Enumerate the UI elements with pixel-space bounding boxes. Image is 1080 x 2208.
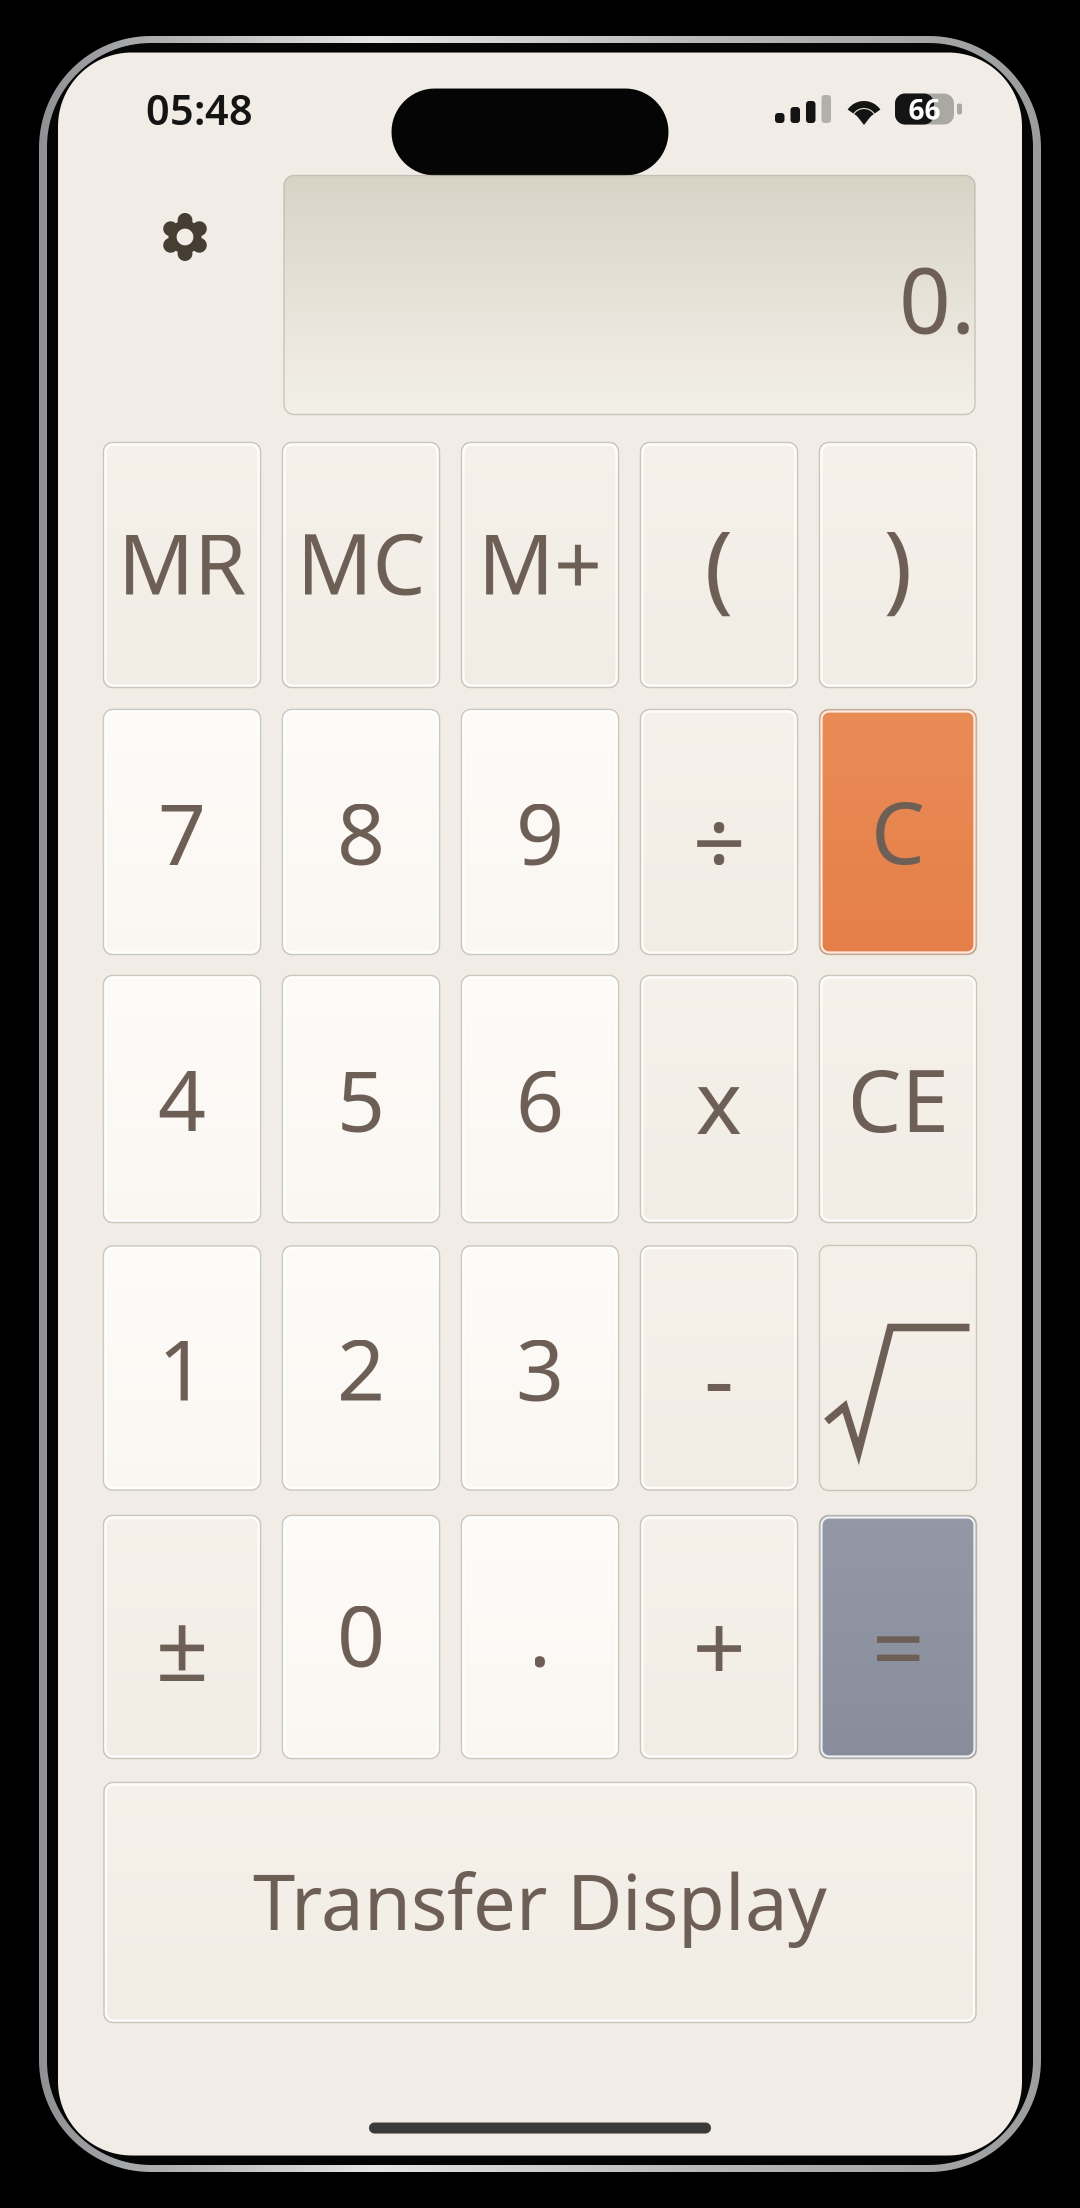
- staticText: M+: [478, 506, 602, 618]
- staticText: 1: [158, 1312, 206, 1424]
- button[interactable]: .: [461, 1515, 618, 1758]
- button[interactable]: 7: [103, 709, 260, 954]
- button[interactable]: (: [640, 442, 797, 687]
- staticText: +: [692, 1583, 745, 1707]
- button[interactable]: 5: [282, 975, 439, 1222]
- staticText: CE: [847, 1042, 948, 1156]
- button[interactable]: x: [640, 975, 797, 1222]
- button[interactable]: 4: [103, 975, 260, 1222]
- button[interactable]: Transfer Display: [104, 1782, 976, 2022]
- staticText: MC: [296, 506, 425, 618]
- staticText: 3: [516, 1312, 564, 1424]
- staticText: 6: [516, 1043, 564, 1155]
- staticText: 0: [337, 1578, 385, 1690]
- staticText: 9: [516, 776, 564, 888]
- staticText: 4: [158, 1043, 206, 1155]
- button[interactable]: +: [640, 1515, 797, 1758]
- staticText: =: [871, 1583, 924, 1707]
- button[interactable]: -: [640, 1246, 797, 1490]
- staticText: MR: [118, 506, 246, 618]
- staticText: Transfer Display: [253, 1850, 827, 1951]
- staticText: 66: [908, 90, 940, 128]
- staticText: 8: [337, 776, 385, 888]
- staticText: 05:48: [146, 82, 253, 136]
- staticText: ±: [155, 1583, 208, 1707]
- staticText: ): [883, 500, 912, 628]
- staticText: (: [704, 500, 733, 628]
- button[interactable]: 9: [461, 709, 618, 954]
- button[interactable]: MR: [103, 442, 260, 687]
- button[interactable]: C: [819, 709, 976, 954]
- staticText: -: [704, 1314, 734, 1438]
- staticText: 0.: [899, 238, 975, 358]
- button[interactable]: ÷: [640, 709, 797, 954]
- button[interactable]: =: [819, 1515, 976, 1758]
- button[interactable]: CE: [819, 975, 976, 1222]
- staticText: .: [528, 1578, 551, 1690]
- button[interactable]: ±: [103, 1515, 260, 1758]
- button[interactable]: Settings: [92, 175, 262, 414]
- staticText: 2: [337, 1312, 385, 1424]
- button[interactable]: 2: [282, 1246, 439, 1490]
- button[interactable]: M+: [461, 442, 618, 687]
- button[interactable]: Square root: [819, 1245, 976, 1490]
- button[interactable]: 0: [282, 1515, 439, 1758]
- button[interactable]: ): [819, 442, 976, 687]
- staticText: x: [695, 1042, 742, 1158]
- staticText: 7: [158, 776, 206, 888]
- staticText: ÷: [692, 778, 745, 902]
- button[interactable]: MC: [282, 442, 439, 687]
- button[interactable]: 3: [461, 1246, 618, 1490]
- button[interactable]: 6: [461, 975, 618, 1222]
- button[interactable]: 8: [282, 709, 439, 954]
- staticText: C: [871, 774, 925, 888]
- button[interactable]: 1: [103, 1246, 260, 1490]
- staticText: 5: [337, 1043, 385, 1155]
